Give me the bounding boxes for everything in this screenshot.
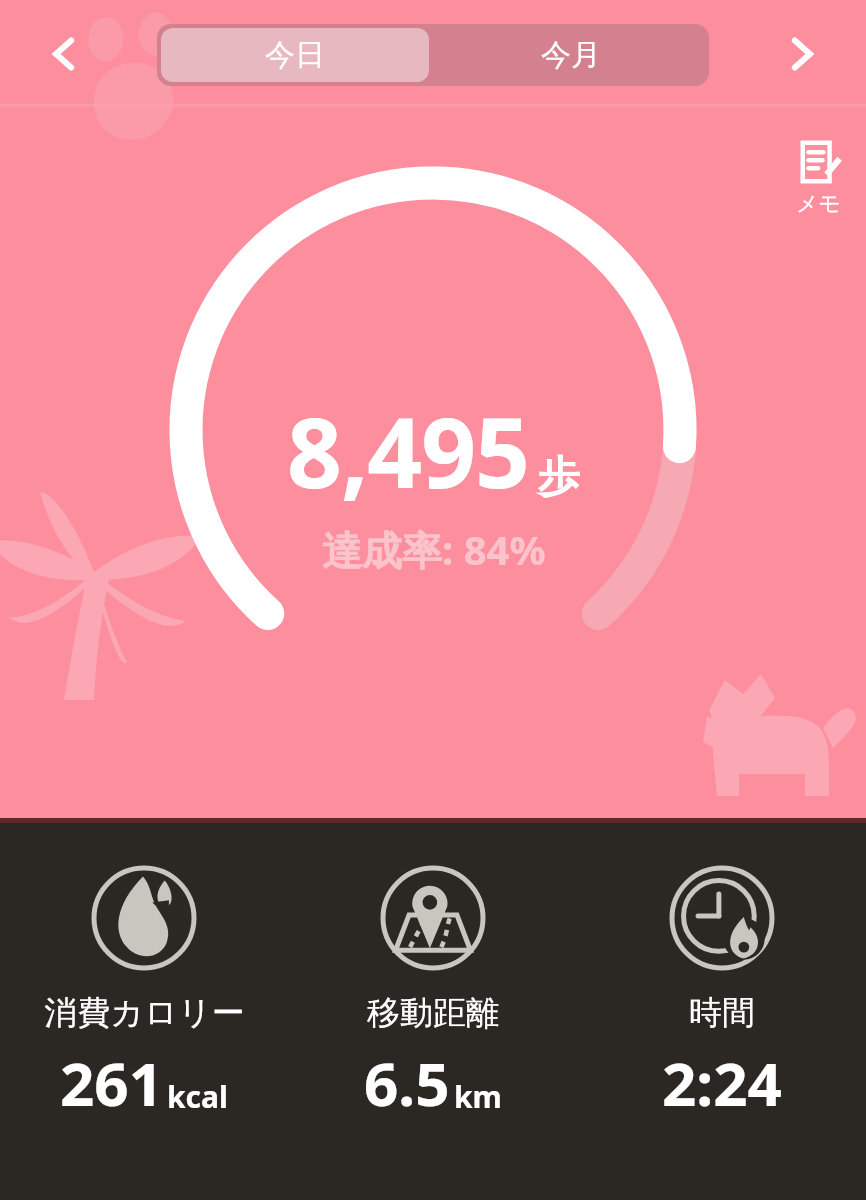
staticText: kcal [167,1076,228,1117]
staticText: 時間 [689,992,755,1034]
button[interactable]: 消費カロリー [0,862,288,1124]
staticText: 2:24 [662,1042,782,1124]
button[interactable]: 移動距離 [288,862,577,1124]
staticText: 移動距離 [367,992,499,1034]
other: 消費カロリー [88,862,200,974]
staticText: 261 [60,1042,163,1124]
staticText: 達成率: 84% [322,522,546,577]
button[interactable]: 今日 [161,28,429,82]
staticText: 8,495 [287,385,530,516]
other: 時間 [666,862,778,974]
button[interactable]: Next [774,26,830,82]
button[interactable]: 時間 [577,862,866,1124]
staticText: 6.5 [364,1042,450,1124]
staticText: 消費カロリー [44,992,245,1034]
staticText: 歩 [538,451,580,504]
staticText: 今日 [265,36,325,74]
staticText: km [454,1076,502,1117]
other: 移動距離 [377,862,489,974]
button[interactable]: Previous [36,26,92,82]
button[interactable]: メモ [796,140,842,218]
staticText: 今月 [541,36,601,74]
staticText: メモ [796,190,842,218]
button[interactable]: 今月 [433,24,709,86]
